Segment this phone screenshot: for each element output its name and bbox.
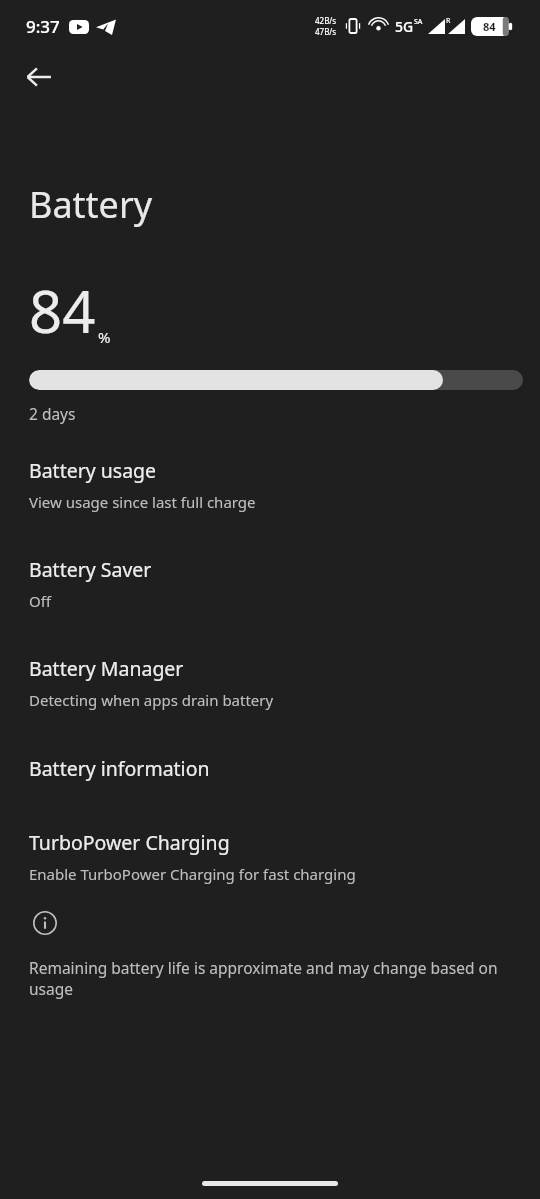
staticText: R (446, 16, 451, 26)
staticText: 5G (395, 17, 414, 36)
button[interactable]: Back (14, 52, 64, 102)
staticText: Remaining battery life is approximate an… (29, 957, 512, 1000)
staticText: Battery information (29, 755, 210, 782)
staticText: Detecting when apps drain battery (29, 690, 274, 710)
staticText: 84 (483, 19, 496, 34)
staticText: TurboPower Charging (29, 829, 230, 856)
staticText: 2 days (29, 403, 76, 424)
staticText: 42B/s (315, 15, 337, 26)
staticText: SA (414, 17, 423, 27)
staticText: 84 (29, 271, 96, 350)
staticText: % (98, 327, 111, 347)
staticText: Battery usage (29, 457, 157, 484)
button[interactable]: Battery Saver (0, 556, 540, 611)
staticText: Battery (29, 180, 153, 229)
button[interactable]: Battery Manager (0, 655, 540, 710)
staticText: Battery Saver (29, 556, 152, 583)
staticText: Off (29, 591, 52, 611)
button[interactable]: Battery usage (0, 457, 540, 512)
button[interactable]: TurboPower Charging (0, 829, 540, 884)
staticText: Battery Manager (29, 655, 184, 682)
staticText: View usage since last full charge (29, 492, 256, 512)
staticText: 47B/s (315, 26, 337, 37)
staticText: 9:37 (26, 15, 60, 38)
staticText: Enable TurboPower Charging for fast char… (29, 864, 356, 884)
